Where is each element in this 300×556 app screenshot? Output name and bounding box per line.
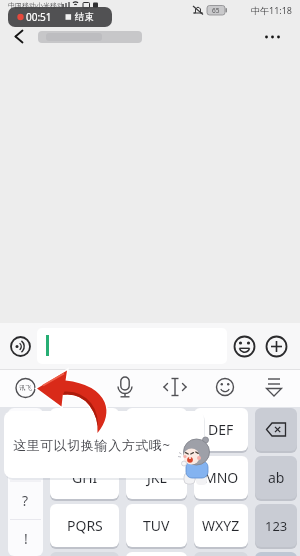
staticText: 中午11:18: [251, 4, 293, 16]
button[interactable]: ab: [255, 456, 297, 499]
button[interactable]: GHI: [50, 456, 119, 499]
button[interactable]: ?: [8, 481, 43, 519]
button[interactable]: DEF: [194, 408, 248, 451]
button[interactable]: [6, 26, 32, 48]
staticText: JKL: [147, 468, 167, 487]
button[interactable]: 123: [255, 504, 297, 547]
staticText: ?: [22, 491, 29, 510]
staticText: DEF: [208, 420, 234, 439]
button[interactable]: [111, 373, 139, 401]
button[interactable]: [194, 552, 248, 556]
button[interactable]: [8, 408, 43, 556]
button[interactable]: [255, 408, 297, 451]
staticText: 这里可以切换输入方式哦~: [13, 436, 171, 454]
button[interactable]: [260, 373, 288, 401]
button[interactable]: TUV: [126, 504, 187, 547]
button[interactable]: [263, 333, 291, 361]
button[interactable]: 分词: [50, 408, 119, 451]
staticText: 结束: [75, 11, 94, 23]
button[interactable]: [258, 26, 288, 48]
staticText: GHI: [72, 468, 98, 487]
staticText: 65: [212, 6, 220, 15]
button[interactable]: [37, 328, 227, 364]
button[interactable]: [211, 373, 239, 401]
button[interactable]: [6, 333, 34, 361]
staticText: PQRS: [67, 516, 103, 535]
button[interactable]: [161, 373, 189, 401]
button[interactable]: ABC: [126, 408, 187, 451]
button[interactable]: [255, 552, 297, 556]
staticText: 讯飞: [19, 384, 32, 392]
staticText: 123: [265, 517, 288, 535]
staticText: 00:51: [26, 10, 52, 24]
staticText: 中国移动小米移动: [8, 1, 64, 10]
button[interactable]: [231, 333, 259, 361]
button[interactable]: WXYZ: [194, 504, 248, 547]
button[interactable]: JKL: [126, 456, 187, 499]
staticText: MNO: [204, 468, 239, 487]
staticText: !: [24, 529, 28, 548]
button[interactable]: MNO: [194, 456, 248, 499]
staticText: TUV: [143, 516, 170, 535]
button[interactable]: [126, 552, 187, 556]
staticText: WXYZ: [202, 516, 240, 535]
staticText: ab: [268, 468, 285, 487]
button[interactable]: [12, 374, 40, 402]
button[interactable]: PQRS: [50, 504, 119, 547]
button[interactable]: !: [8, 519, 43, 556]
